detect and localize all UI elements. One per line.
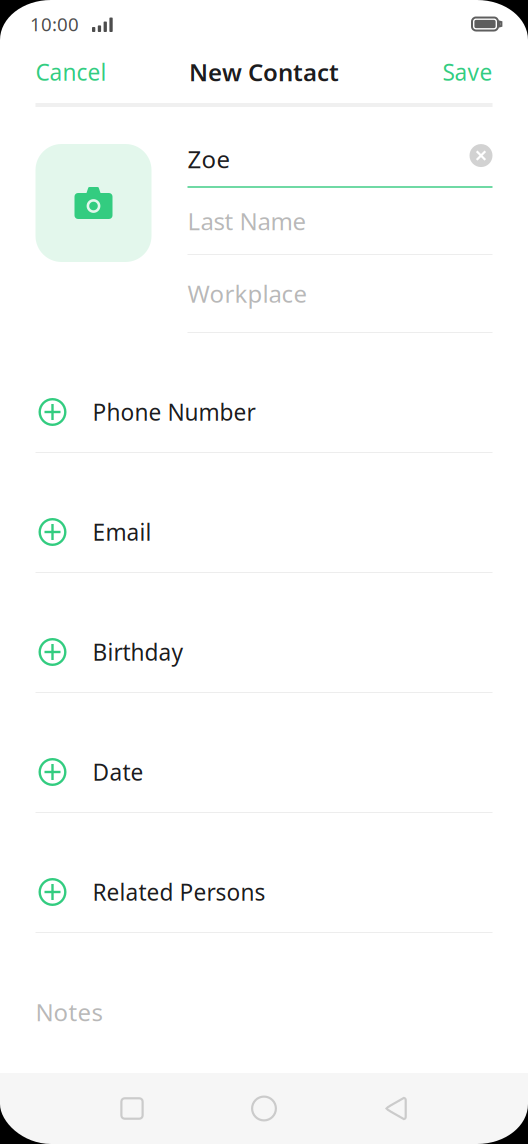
button[interactable]: Phone Number (35, 372, 492, 492)
staticText: 10:00 (30, 12, 79, 36)
button[interactable]: Back (330, 1073, 462, 1144)
button[interactable]: Email (35, 492, 492, 612)
button[interactable]: Cancel (35, 57, 106, 87)
staticText: Phone Number (92, 397, 255, 427)
button[interactable]: Save (442, 57, 492, 87)
staticText: Date (92, 757, 143, 787)
button[interactable]: Recent apps (66, 1073, 198, 1144)
button[interactable]: Add photo (35, 144, 151, 262)
button[interactable]: Related Persons (35, 852, 492, 972)
button[interactable]: Clear text (469, 143, 492, 167)
button[interactable]: Date (35, 732, 492, 852)
staticText: Birthday (92, 637, 183, 667)
staticText: Zoe (187, 143, 230, 175)
staticText: Workplace (187, 278, 307, 309)
staticText: Email (92, 517, 151, 547)
button[interactable]: Birthday (35, 612, 492, 732)
staticText: New Contact (189, 56, 339, 88)
staticText: Notes (35, 996, 102, 1028)
staticText: Related Persons (92, 877, 265, 907)
staticText: Cancel (35, 57, 106, 87)
staticText: Last Name (187, 205, 306, 237)
staticText: Save (442, 57, 492, 87)
button[interactable]: Home (198, 1073, 330, 1144)
